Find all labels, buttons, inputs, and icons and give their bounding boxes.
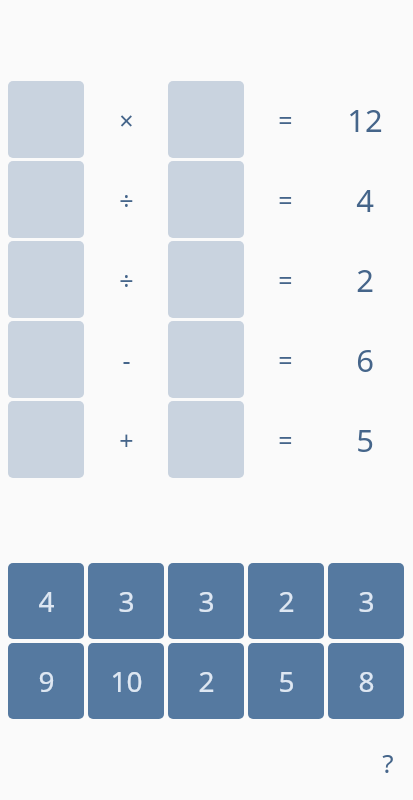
button[interactable]: 2 (168, 643, 244, 719)
staticText: 9 (38, 662, 55, 700)
button[interactable]: Help (363, 737, 413, 787)
staticText: 5 (356, 419, 374, 461)
button[interactable]: 4 (8, 563, 84, 639)
button[interactable]: 10 (88, 643, 164, 719)
staticText: 2 (278, 582, 295, 620)
button[interactable]: 3 (328, 563, 404, 639)
staticText: 10 (110, 662, 143, 700)
staticText: = (278, 183, 293, 217)
staticText: 4 (38, 582, 55, 620)
button[interactable]: 3 (168, 563, 244, 639)
staticText: 2 (198, 662, 215, 700)
staticText: - (122, 343, 131, 377)
staticText: ÷ (119, 183, 134, 217)
staticText: = (278, 103, 293, 137)
button[interactable]: 9 (8, 643, 84, 719)
staticText: 4 (356, 179, 374, 221)
staticText: + (119, 423, 134, 457)
staticText: 2 (356, 259, 374, 301)
button[interactable]: 5 (248, 643, 324, 719)
staticText: ? (382, 745, 394, 780)
staticText: 6 (356, 339, 374, 381)
staticText: ÷ (119, 263, 134, 297)
staticText: 8 (358, 662, 375, 700)
staticText: = (278, 423, 293, 457)
staticText: 12 (347, 99, 383, 141)
staticText: × (119, 103, 134, 137)
staticText: 5 (278, 662, 295, 700)
staticText: = (278, 263, 293, 297)
staticText: = (278, 343, 293, 377)
button[interactable]: 2 (248, 563, 324, 639)
button[interactable]: 3 (88, 563, 164, 639)
button[interactable]: 8 (328, 643, 404, 719)
staticText: 3 (198, 582, 215, 620)
staticText: 3 (118, 582, 135, 620)
staticText: 3 (358, 582, 375, 620)
